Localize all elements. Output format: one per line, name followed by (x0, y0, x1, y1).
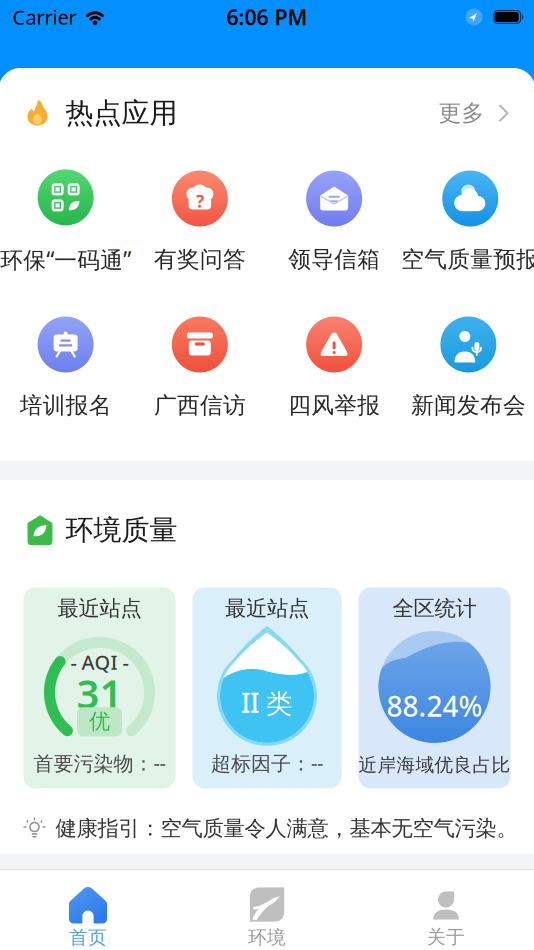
staticText: 6:06 PM (226, 3, 307, 31)
button[interactable]: 环保“一码通” (0, 169, 131, 274)
staticText: Carrier (12, 4, 76, 30)
button[interactable]: 关于 (356, 887, 534, 948)
staticText: 31 (76, 666, 122, 719)
button[interactable]: 最近站点 (192, 587, 341, 788)
staticText: 超标因子：-- (211, 750, 323, 776)
staticText: 88.24% (386, 687, 482, 724)
button[interactable]: 首页 (0, 887, 177, 949)
staticText: 空气质量预报 (401, 245, 534, 273)
staticText: 热点应用 (65, 96, 177, 130)
staticText: 首页 (69, 926, 107, 949)
button[interactable]: 空气质量预报 (401, 170, 534, 273)
button[interactable]: 新闻发布会 (411, 316, 526, 419)
button[interactable]: 广西信访 (154, 316, 246, 419)
staticText: 培训报名 (20, 391, 112, 419)
staticText: 最近站点 (57, 595, 141, 622)
button[interactable]: 培训报名 (20, 316, 112, 419)
staticText: 新闻发布会 (411, 391, 526, 419)
button[interactable]: 更多 (438, 99, 508, 127)
staticText: 全区统计 (392, 595, 476, 622)
staticText: II 类 (241, 685, 293, 720)
staticText: 健康指引：空气质量令人满意，基本无空气污染。 (55, 815, 517, 842)
button[interactable]: 环境 (177, 887, 356, 949)
staticText: 最近站点 (225, 595, 309, 622)
button[interactable]: 四风举报 (288, 316, 380, 419)
staticText: 环境质量 (65, 513, 177, 547)
staticText: 更多 (438, 99, 484, 127)
staticText: 关于 (427, 925, 465, 948)
button[interactable]: 最近站点 (23, 587, 175, 788)
staticText: 四风举报 (288, 391, 380, 419)
staticText: 优 (89, 708, 110, 734)
staticText: - AQI - (70, 649, 128, 675)
staticText: 有奖问答 (154, 245, 246, 273)
staticText: 环境 (248, 926, 286, 949)
staticText: 近岸海域优良占比 (358, 753, 510, 776)
staticText: 广西信访 (154, 391, 246, 419)
staticText: 环保“一码通” (0, 244, 131, 274)
button[interactable]: ? (154, 170, 246, 273)
staticText: 首要污染物：-- (33, 750, 165, 776)
button[interactable]: 全区统计 (358, 587, 510, 788)
staticText: 领导信箱 (288, 245, 380, 273)
staticText: ? (196, 189, 204, 212)
button[interactable]: 领导信箱 (288, 170, 380, 273)
